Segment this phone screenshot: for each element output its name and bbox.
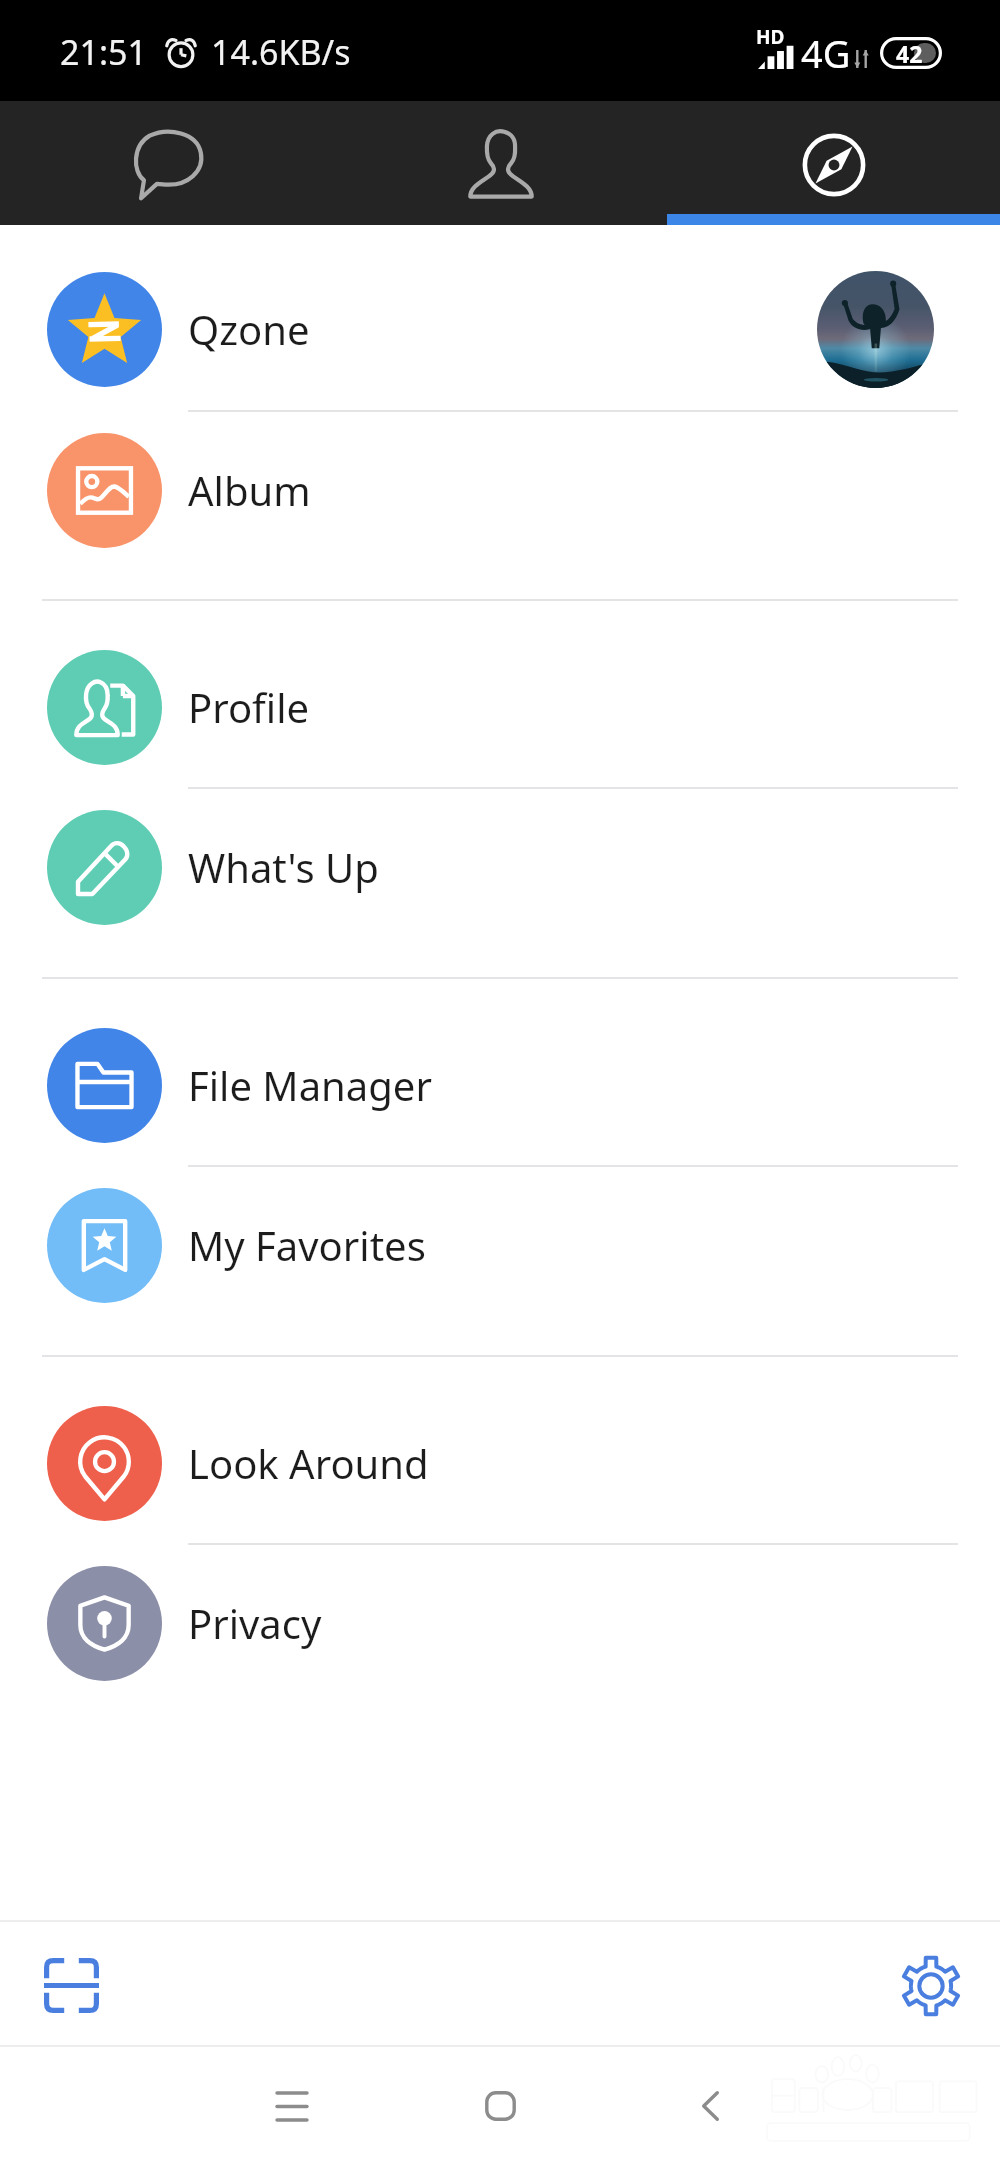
button[interactable]: Privacy [0, 1543, 1000, 1703]
button[interactable]: Recents [237, 2051, 347, 2161]
staticText: 21:51 [60, 29, 147, 75]
button[interactable]: Qzone [0, 249, 1000, 409]
button[interactable]: Home [445, 2051, 555, 2161]
staticText: What's Up [188, 840, 379, 894]
button[interactable]: Messages [0, 101, 334, 225]
staticText: 4G [801, 27, 851, 79]
button[interactable]: Scan [14, 1928, 129, 2043]
staticText: 14.6KB/s [211, 29, 351, 75]
staticText: File Manager [188, 1058, 432, 1112]
button[interactable]: Look Around [0, 1383, 1000, 1543]
button[interactable]: File Manager [0, 1005, 1000, 1165]
button[interactable]: Profile [0, 627, 1000, 787]
staticText: Look Around [188, 1436, 429, 1490]
staticText: Profile [188, 680, 310, 734]
button[interactable]: Profile photo [817, 271, 934, 388]
button[interactable]: What's Up [0, 787, 1000, 947]
button[interactable]: Contacts [334, 101, 667, 225]
staticText: My Favorites [188, 1218, 426, 1272]
button[interactable]: Album [0, 410, 1000, 570]
staticText: Privacy [188, 1596, 322, 1650]
button[interactable]: Discover [667, 101, 1000, 225]
staticText: 42 [896, 38, 923, 69]
button[interactable]: Settings [873, 1928, 988, 2043]
staticText: HD [756, 24, 785, 50]
staticText: Album [188, 463, 311, 517]
button[interactable]: My Favorites [0, 1165, 1000, 1325]
button[interactable]: Back [655, 2051, 765, 2161]
staticText: Qzone [188, 302, 310, 356]
